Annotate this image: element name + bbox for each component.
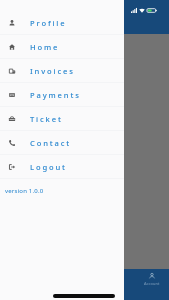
button[interactable]: Payments	[0, 83, 124, 107]
staticText: Home	[30, 42, 60, 52]
staticText: Payments	[30, 90, 81, 100]
staticText: Ticket	[30, 114, 63, 124]
staticText: version 1.0.0	[5, 187, 44, 195]
button[interactable]: Profile	[0, 11, 124, 35]
button[interactable]: Logout	[0, 155, 124, 179]
button[interactable]: Invoices	[0, 59, 124, 83]
staticText: Invoices	[30, 66, 75, 76]
button[interactable]: Account	[135, 269, 169, 300]
button[interactable]: Ticket	[101, 269, 135, 300]
staticText: Account	[144, 281, 160, 286]
staticText: Contact	[30, 138, 72, 148]
button[interactable]: Contact	[0, 131, 124, 155]
button[interactable]: Home	[0, 35, 124, 59]
staticText: Logout	[30, 162, 67, 172]
button[interactable]: Payments	[67, 269, 101, 300]
button[interactable]: Invoices	[33, 269, 67, 300]
staticText: Profile	[30, 18, 67, 28]
button[interactable]: Ticket	[0, 107, 124, 131]
